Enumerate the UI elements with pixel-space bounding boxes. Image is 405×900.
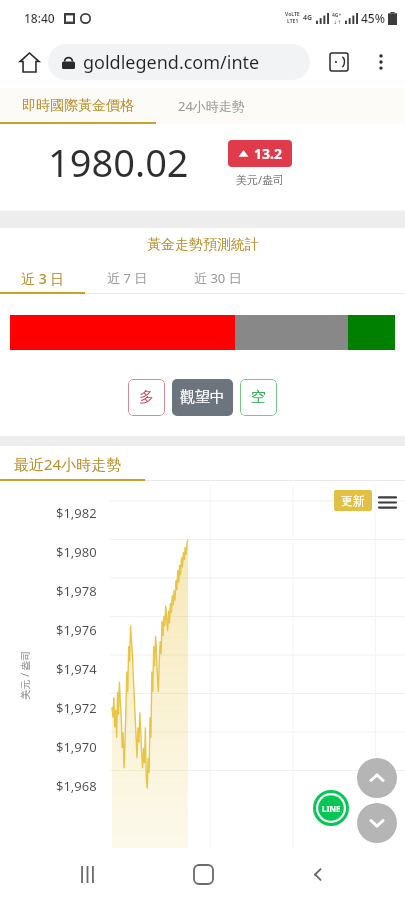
- staticText: $1,976: [56, 621, 97, 639]
- button[interactable]: 多: [128, 379, 165, 416]
- staticText: 即時國際黃金價格: [22, 97, 134, 115]
- button[interactable]: 近 7 日: [85, 262, 170, 294]
- button[interactable]: Chart menu: [376, 491, 398, 513]
- staticText: 最近24小時走勢: [14, 454, 122, 474]
- staticText: $1,980: [56, 543, 97, 561]
- staticText: 美元 / 盎司: [17, 650, 31, 699]
- button[interactable]: LINE: [313, 790, 349, 826]
- button[interactable]: 空: [240, 379, 277, 416]
- button[interactable]: More options: [363, 44, 399, 80]
- button[interactable]: goldlegend.com/inte: [48, 44, 310, 80]
- staticText: 24小時走勢: [178, 97, 245, 115]
- button[interactable]: Home: [175, 848, 231, 900]
- staticText: 更新: [341, 493, 365, 508]
- staticText: 黃金走勢預測統計: [147, 236, 259, 254]
- button[interactable]: Home: [10, 43, 48, 81]
- staticText: 近 7 日: [107, 269, 148, 287]
- button[interactable]: 近 30 日: [170, 262, 265, 294]
- staticText: $1,970: [56, 738, 97, 756]
- button[interactable]: 24小時走勢: [156, 88, 266, 124]
- staticText: LTE1: [287, 18, 299, 25]
- button[interactable]: Recents: [59, 848, 115, 900]
- staticText: 4G: [303, 13, 313, 23]
- staticText: 4G+: [332, 12, 342, 19]
- staticText: 13.2: [254, 144, 282, 163]
- button[interactable]: Scroll down: [357, 803, 397, 843]
- staticText: ↓↑: [333, 19, 342, 25]
- staticText: 多: [139, 388, 154, 407]
- staticText: LINE: [322, 803, 341, 814]
- staticText: 45%: [361, 10, 385, 26]
- button[interactable]: 更新: [334, 490, 372, 511]
- button[interactable]: 即時國際黃金價格: [0, 88, 156, 124]
- staticText: goldlegend.com/inte: [83, 50, 260, 75]
- button[interactable]: 觀望中: [172, 379, 233, 416]
- button[interactable]: Scroll up: [357, 758, 397, 798]
- staticText: $1,982: [56, 504, 97, 522]
- staticText: 觀望中: [180, 388, 225, 407]
- staticText: 美元/盎司: [236, 172, 285, 187]
- staticText: VoLTE: [285, 11, 300, 18]
- staticText: 近 3 日: [21, 269, 65, 288]
- button[interactable]: 近 3 日: [0, 262, 85, 294]
- staticText: $1,974: [56, 660, 97, 678]
- staticText: 空: [251, 388, 266, 407]
- staticText: 1980.02: [48, 136, 189, 188]
- staticText: $1,972: [56, 699, 97, 717]
- staticText: $1,968: [56, 777, 97, 795]
- button[interactable]: Back: [290, 848, 346, 900]
- staticText: $1,978: [56, 582, 97, 600]
- staticText: 18:40: [24, 10, 55, 26]
- staticText: 近 30 日: [194, 269, 242, 287]
- button[interactable]: Reader mode: [322, 45, 356, 79]
